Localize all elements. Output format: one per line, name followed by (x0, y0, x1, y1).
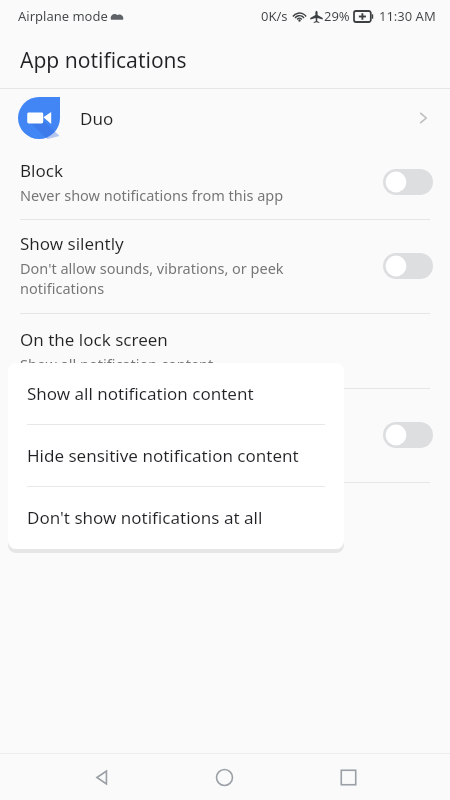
button[interactable]: Duo (0, 89, 450, 147)
button[interactable]: Block (0, 147, 450, 219)
staticText: On the lock screen (20, 328, 168, 351)
staticText: Never show notifications from this app (20, 185, 284, 205)
staticText: Duo (80, 107, 114, 130)
button[interactable]: Toggle (382, 167, 434, 197)
staticText: 29% (324, 7, 350, 25)
other: Open Duo app info (413, 108, 433, 128)
button[interactable]: Hide sensitive notification content (8, 425, 344, 486)
staticText: Block (20, 159, 63, 182)
button[interactable]: Don't show notifications at all (8, 487, 344, 548)
staticText: Show all notification content (27, 382, 254, 405)
button[interactable]: On the lock screen (0, 314, 450, 388)
staticText: Let these notifications continue to inte… (20, 427, 317, 468)
staticText: Don't allow sounds, vibrations, or peek … (20, 258, 284, 299)
button[interactable]: Show all notification content (8, 363, 344, 424)
button[interactable]: Override Do Not Disturb (0, 389, 450, 482)
staticText: Hide sensitive notification content (27, 444, 299, 467)
staticText: App notifications (20, 46, 187, 75)
staticText: Show all notification content (20, 354, 214, 374)
staticText: Don't show notifications at all (27, 506, 263, 529)
button[interactable]: Show silently (0, 220, 450, 313)
staticText: Show silently (20, 232, 124, 255)
staticText: Airplane mode (18, 7, 108, 25)
button[interactable]: Back (79, 755, 123, 799)
button[interactable]: Recent apps (326, 755, 370, 799)
staticText: 0K/s (261, 7, 288, 25)
button[interactable]: Toggle (382, 251, 434, 281)
button[interactable]: Toggle (382, 420, 434, 450)
staticText: 11:30 AM (379, 7, 436, 25)
button[interactable]: Home (202, 755, 246, 799)
